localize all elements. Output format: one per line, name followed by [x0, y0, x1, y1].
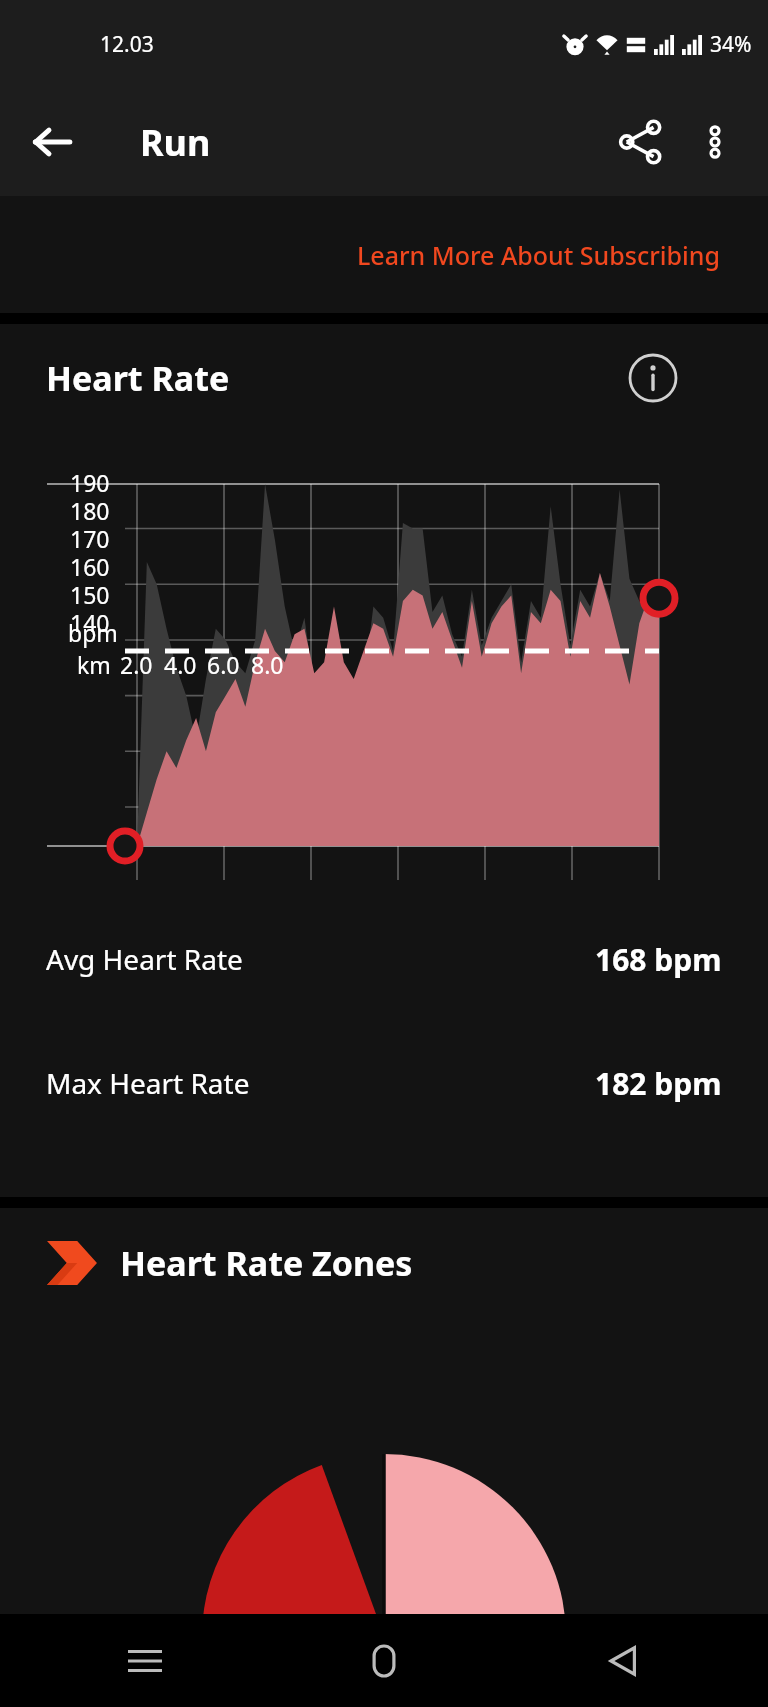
staticText: bpm	[68, 617, 118, 648]
button[interactable]: Back	[588, 1626, 658, 1696]
staticText: 190	[70, 467, 110, 498]
staticText: Avg Heart Rate	[46, 940, 243, 978]
button[interactable]: Home	[349, 1626, 419, 1696]
staticText: 180	[70, 495, 110, 526]
button[interactable]: Avg Heart Rate	[0, 932, 768, 986]
button[interactable]: Info	[624, 349, 682, 407]
button[interactable]: Max Heart Rate	[0, 1056, 768, 1110]
staticText: Heart Rate Zones	[120, 1240, 413, 1286]
staticText: 4.0	[164, 649, 197, 680]
staticText: 12.03	[100, 30, 154, 59]
staticText: Run	[140, 118, 211, 167]
staticText: Max Heart Rate	[46, 1064, 250, 1102]
staticText: 150	[70, 579, 110, 610]
staticText: 170	[70, 523, 110, 554]
staticText: 160	[70, 551, 110, 582]
staticText: 34%	[710, 30, 752, 59]
staticText: 2.0	[120, 649, 153, 680]
staticText: 182 bpm	[595, 1063, 722, 1104]
staticText: Heart Rate	[46, 355, 230, 401]
button[interactable]: Heart Rate Zones	[0, 1208, 768, 1318]
staticText: Learn More About Subscribing	[357, 238, 720, 272]
button[interactable]: Back	[20, 110, 84, 174]
button[interactable]: More options	[686, 113, 744, 171]
staticText: 6.0	[207, 649, 240, 680]
staticText: 140	[70, 607, 110, 638]
button[interactable]: Recents	[110, 1626, 180, 1696]
staticText: 168 bpm	[595, 939, 722, 980]
button[interactable]: Learn More About Subscribing	[0, 196, 768, 313]
staticText: km	[77, 649, 111, 680]
button[interactable]: Share	[608, 109, 674, 175]
staticText: 8.0	[251, 649, 284, 680]
